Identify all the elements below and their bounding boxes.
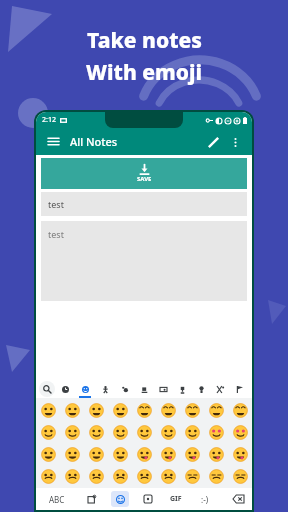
button[interactable]: Emoji [84, 399, 108, 421]
button[interactable]: Emoji [132, 443, 156, 465]
button[interactable]: Emoji [60, 443, 84, 465]
button[interactable]: Emoji [180, 421, 204, 443]
staticText: All Notes [70, 134, 118, 149]
button[interactable]: Emoji [204, 443, 228, 465]
button[interactable]: Emoji [180, 399, 204, 421]
button[interactable]: Food [135, 380, 154, 398]
button[interactable]: Emoji [132, 421, 156, 443]
button[interactable]: ABC [42, 488, 72, 510]
button[interactable]: SAVE [41, 158, 247, 189]
button[interactable]: Activity [173, 380, 192, 398]
button[interactable]: Travel [154, 380, 173, 398]
staticText: ABC [49, 494, 65, 505]
button[interactable]: test [41, 221, 247, 301]
button[interactable]: Emoji [84, 421, 108, 443]
button[interactable]: Emoji [60, 465, 84, 487]
staticText: 2:12 [42, 115, 56, 125]
button[interactable]: Emoji [108, 421, 132, 443]
button[interactable]: Emoji [84, 443, 108, 465]
button[interactable]: Emoji [204, 399, 228, 421]
button[interactable]: Emoji [228, 443, 252, 465]
button[interactable]: Objects [192, 380, 211, 398]
button[interactable]: Emoji [84, 465, 108, 487]
button[interactable]: Animals [115, 380, 135, 398]
button[interactable]: Search [39, 381, 55, 397]
button[interactable]: GIF [167, 488, 185, 510]
button[interactable]: Emoji [180, 465, 204, 487]
button[interactable]: test [41, 192, 247, 216]
button[interactable]: :-) [197, 488, 213, 510]
button[interactable]: Menu [44, 133, 62, 151]
button[interactable]: Emoji [180, 443, 204, 465]
button[interactable]: Emoji [228, 465, 252, 487]
button[interactable]: Emoji [204, 465, 228, 487]
button[interactable]: Backspace [230, 491, 246, 507]
button[interactable]: Stickers [85, 492, 99, 506]
button[interactable]: Emoji [156, 465, 180, 487]
button[interactable]: Emoji [228, 399, 252, 421]
button[interactable]: Smileys [75, 380, 95, 398]
button[interactable]: Emoji [60, 421, 84, 443]
button[interactable]: Emoji [108, 399, 132, 421]
button[interactable]: Emoji [132, 399, 156, 421]
button[interactable]: Emoji [156, 399, 180, 421]
button[interactable]: Symbols [211, 380, 230, 398]
staticText: GIF [170, 494, 182, 504]
button[interactable]: Emoji [156, 443, 180, 465]
button[interactable]: Emoji [156, 421, 180, 443]
button[interactable]: Emoji [228, 421, 252, 443]
button[interactable]: More options [226, 133, 244, 151]
button[interactable]: Emoji [204, 421, 228, 443]
staticText: test [48, 228, 64, 240]
staticText: With emoji [86, 58, 202, 87]
button[interactable]: Emoji [36, 421, 60, 443]
staticText: test [48, 198, 64, 210]
button[interactable]: GIF sticker [141, 492, 155, 506]
staticText: :-) [201, 494, 209, 505]
button[interactable]: Emoji [36, 465, 60, 487]
button[interactable]: Emoji [36, 443, 60, 465]
button[interactable]: Emoji [132, 465, 156, 487]
button[interactable]: Emoji [108, 465, 132, 487]
button[interactable]: Emoji [36, 399, 60, 421]
button[interactable]: Emoji [111, 491, 129, 507]
staticText: Take notes [87, 26, 202, 55]
button[interactable]: Edit [203, 132, 223, 152]
button[interactable]: People [95, 380, 115, 398]
button[interactable]: Emoji [108, 443, 132, 465]
button[interactable]: Recent [55, 380, 75, 398]
staticText: SAVE [137, 175, 152, 183]
button[interactable]: Emoji [60, 399, 84, 421]
button[interactable]: Flags [230, 380, 249, 398]
